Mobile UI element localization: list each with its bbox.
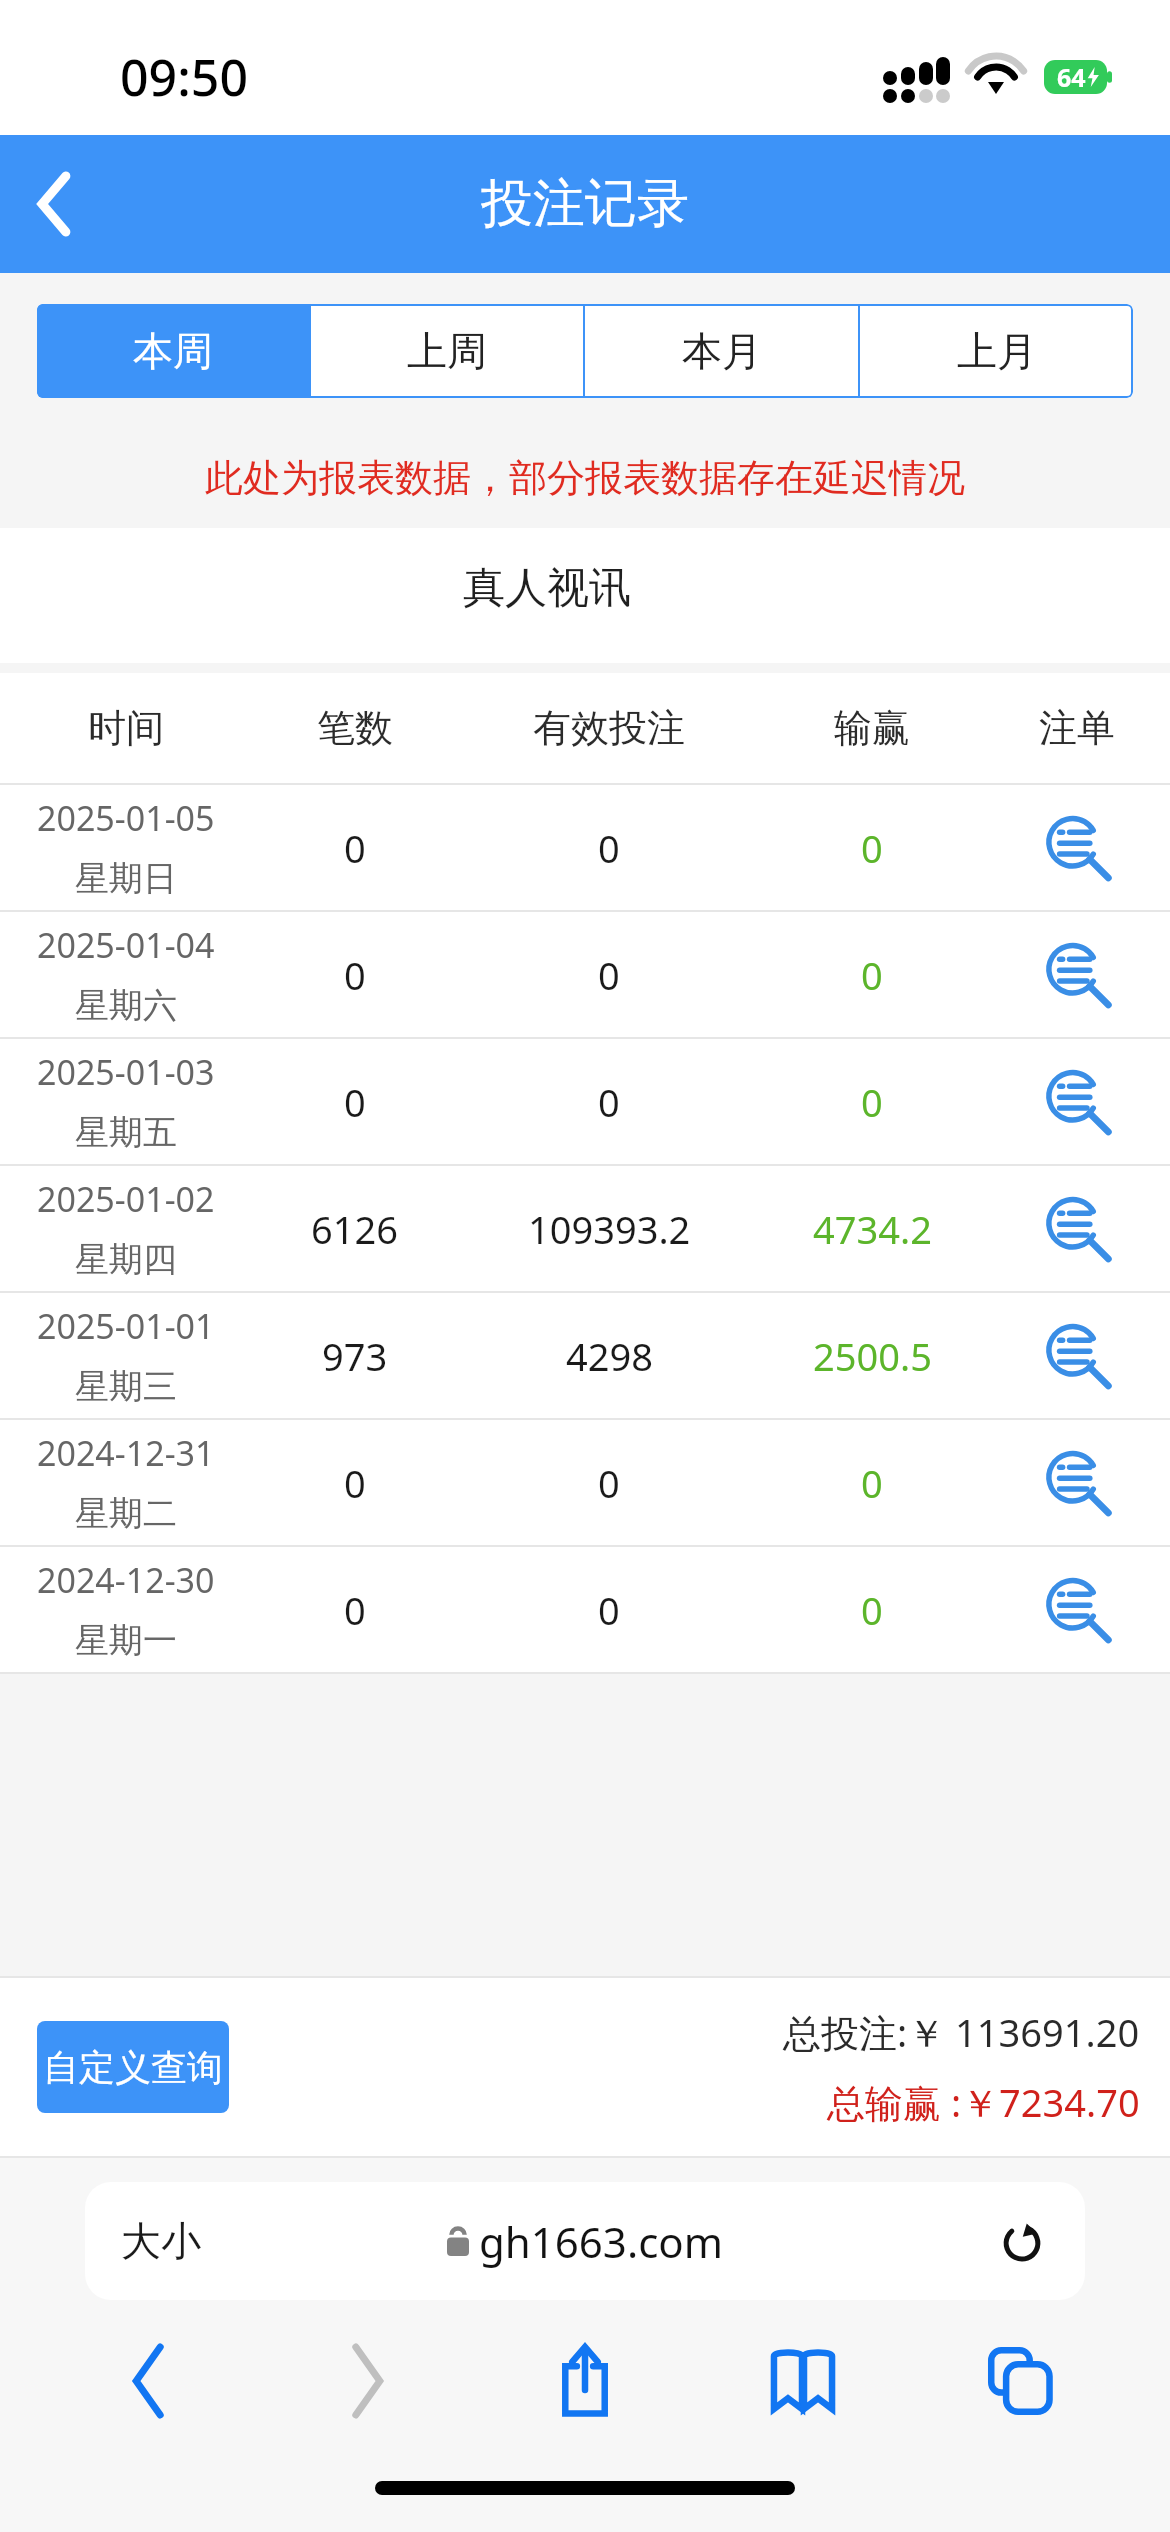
staticText: 2025-01-04 bbox=[37, 922, 215, 968]
staticText: 星期五 bbox=[75, 1111, 177, 1154]
staticText: 0 bbox=[861, 1584, 883, 1636]
button[interactable]: 查看注单 bbox=[1034, 1059, 1120, 1145]
staticText: 64 bbox=[1057, 60, 1086, 94]
staticText: 0 bbox=[598, 1584, 620, 1636]
button[interactable]: 自定义查询 bbox=[37, 2021, 229, 2113]
staticText: 109393.2 bbox=[528, 1203, 691, 1255]
button[interactable]: Back bbox=[40, 2322, 258, 2440]
button[interactable]: Share bbox=[476, 2322, 694, 2440]
staticText: 0 bbox=[861, 1457, 883, 1509]
staticText: 2500.5 bbox=[813, 1330, 932, 1382]
button[interactable]: Bookmarks bbox=[694, 2322, 912, 2440]
button[interactable]: 2025-01-05 bbox=[0, 785, 1170, 910]
staticText: 0 bbox=[344, 1584, 366, 1636]
staticText: 有效投注 bbox=[533, 704, 685, 752]
staticText: 2025-01-03 bbox=[37, 1049, 215, 1095]
staticText: 973 bbox=[322, 1330, 388, 1382]
staticText: 2024-12-30 bbox=[37, 1557, 215, 1603]
button[interactable]: 本月 bbox=[585, 304, 858, 398]
staticText: 0 bbox=[598, 949, 620, 1001]
button[interactable]: Back bbox=[0, 149, 110, 259]
staticText: 输赢 bbox=[834, 704, 910, 752]
button[interactable]: Forward bbox=[258, 2322, 476, 2440]
staticText: 星期六 bbox=[75, 984, 177, 1027]
button[interactable]: Tabs bbox=[912, 2322, 1130, 2440]
staticText: 星期四 bbox=[75, 1238, 177, 1281]
staticText: 0 bbox=[861, 949, 883, 1001]
staticText: 0 bbox=[598, 1457, 620, 1509]
staticText: 0 bbox=[344, 949, 366, 1001]
staticText: 6126 bbox=[311, 1203, 398, 1255]
staticText: 0 bbox=[861, 1076, 883, 1128]
staticText: 星期三 bbox=[75, 1365, 177, 1408]
staticText: 投注记录 bbox=[481, 171, 689, 237]
staticText: 0 bbox=[344, 822, 366, 874]
staticText: 大小 bbox=[121, 2216, 201, 2266]
button[interactable]: 2025-01-04 bbox=[0, 912, 1170, 1037]
staticText: 总输赢 :￥7234.70 bbox=[827, 2076, 1140, 2128]
staticText: 2024-12-31 bbox=[37, 1430, 215, 1476]
staticText: 0 bbox=[344, 1076, 366, 1128]
staticText: 0 bbox=[598, 822, 620, 874]
staticText: 2025-01-05 bbox=[37, 795, 215, 841]
staticText: 上周 bbox=[407, 326, 487, 376]
staticText: 本月 bbox=[682, 326, 762, 376]
staticText: 4298 bbox=[566, 1330, 653, 1382]
button[interactable]: 查看注单 bbox=[1034, 1313, 1120, 1399]
button[interactable]: 上周 bbox=[311, 304, 583, 398]
button[interactable]: 2024-12-30 bbox=[0, 1547, 1170, 1672]
staticText: 星期一 bbox=[75, 1619, 177, 1662]
button[interactable]: 2025-01-02 bbox=[0, 1166, 1170, 1291]
button[interactable]: 2024-12-31 bbox=[0, 1420, 1170, 1545]
staticText: 注单 bbox=[1039, 704, 1115, 752]
staticText: 2025-01-02 bbox=[37, 1176, 215, 1222]
button[interactable]: 大小 bbox=[85, 2182, 1085, 2300]
button[interactable]: 查看注单 bbox=[1034, 1440, 1120, 1526]
button[interactable]: 上月 bbox=[860, 304, 1133, 398]
staticText: 真人视讯 bbox=[463, 562, 631, 615]
button[interactable]: 查看注单 bbox=[1034, 1567, 1120, 1653]
staticText: 星期二 bbox=[75, 1492, 177, 1535]
staticText: 2025-01-01 bbox=[37, 1303, 215, 1349]
button[interactable]: 本周 bbox=[37, 304, 309, 398]
button[interactable]: 查看注单 bbox=[1034, 1186, 1120, 1272]
staticText: 0 bbox=[344, 1457, 366, 1509]
staticText: 09:50 bbox=[120, 43, 248, 111]
staticText: gh1663.com bbox=[479, 2213, 723, 2270]
staticText: 自定义查询 bbox=[43, 2045, 223, 2090]
staticText: 0 bbox=[598, 1076, 620, 1128]
staticText: 时间 bbox=[88, 704, 164, 752]
button[interactable]: 查看注单 bbox=[1034, 932, 1120, 1018]
staticText: 4734.2 bbox=[813, 1203, 932, 1255]
button[interactable]: 2025-01-01 bbox=[0, 1293, 1170, 1418]
button[interactable]: 真人视讯 bbox=[0, 528, 1106, 663]
staticText: 本周 bbox=[133, 326, 213, 376]
button[interactable]: 查看注单 bbox=[1034, 805, 1120, 891]
button[interactable]: 2025-01-03 bbox=[0, 1039, 1170, 1164]
staticText: 总投注:￥ 113691.20 bbox=[783, 2006, 1140, 2058]
staticText: 0 bbox=[861, 822, 883, 874]
staticText: 笔数 bbox=[317, 704, 393, 752]
staticText: 上月 bbox=[957, 326, 1037, 376]
staticText: 星期日 bbox=[75, 857, 177, 900]
button[interactable]: Reload bbox=[987, 2206, 1057, 2276]
staticText: 此处为报表数据，部分报表数据存在延迟情况 bbox=[205, 454, 965, 502]
